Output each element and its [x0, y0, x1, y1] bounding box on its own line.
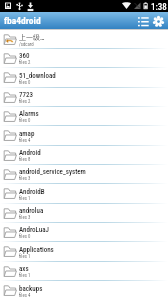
staticText: axs — [19, 265, 29, 273]
staticText: files 1 — [19, 196, 31, 202]
staticText: AndroLuaJ — [19, 226, 49, 234]
staticText: 51_download — [19, 72, 56, 80]
staticText: androlua — [19, 207, 44, 215]
staticText: files 3 — [19, 215, 31, 221]
button[interactable]: Applications — [0, 242, 168, 261]
staticText: files 3 — [19, 176, 31, 182]
staticText: 上一级… — [19, 33, 45, 42]
button[interactable]: 上一级… — [0, 30, 168, 48]
staticText: files 1 — [19, 273, 31, 279]
staticText: files 4 — [19, 138, 31, 144]
staticText: 1:38 — [151, 2, 167, 12]
staticText: amap — [19, 130, 35, 138]
button[interactable]: List options — [136, 14, 150, 28]
button[interactable]: Alarms — [0, 107, 168, 125]
button[interactable]: 51_download — [0, 68, 168, 87]
button[interactable]: backups — [0, 281, 168, 300]
staticText: files 4 — [19, 293, 31, 299]
staticText: fba4droid — [4, 15, 41, 26]
staticText: files 0 — [19, 234, 31, 240]
staticText: AndroidB — [19, 188, 45, 196]
staticText: files 0 — [19, 80, 31, 86]
staticText: files 1 — [19, 254, 31, 260]
staticText: files 2 — [19, 99, 31, 105]
staticText: android_service_system — [19, 168, 86, 176]
staticText: files 0 — [19, 118, 31, 124]
staticText: Alarms — [19, 110, 39, 118]
staticText: Applications — [19, 246, 54, 254]
button[interactable]: 360 — [0, 49, 168, 67]
button[interactable]: amap — [0, 126, 168, 145]
button[interactable]: AndroLuaJ — [0, 223, 168, 241]
staticText: Android — [19, 149, 41, 157]
staticText: files 8 — [19, 157, 31, 163]
staticText: 7723 — [19, 91, 33, 99]
button[interactable]: Android — [0, 146, 168, 164]
staticText: /sdcard — [19, 42, 34, 48]
button[interactable]: androlua — [0, 204, 168, 222]
button[interactable]: Settings — [151, 14, 165, 28]
staticText: backups — [19, 285, 43, 293]
button[interactable]: AndroidB — [0, 184, 168, 203]
button[interactable]: android_service_system — [0, 165, 168, 183]
button[interactable]: axs — [0, 262, 168, 280]
button[interactable]: 7723 — [0, 88, 168, 106]
staticText: files 2 — [19, 60, 31, 66]
staticText: 360 — [19, 52, 30, 60]
